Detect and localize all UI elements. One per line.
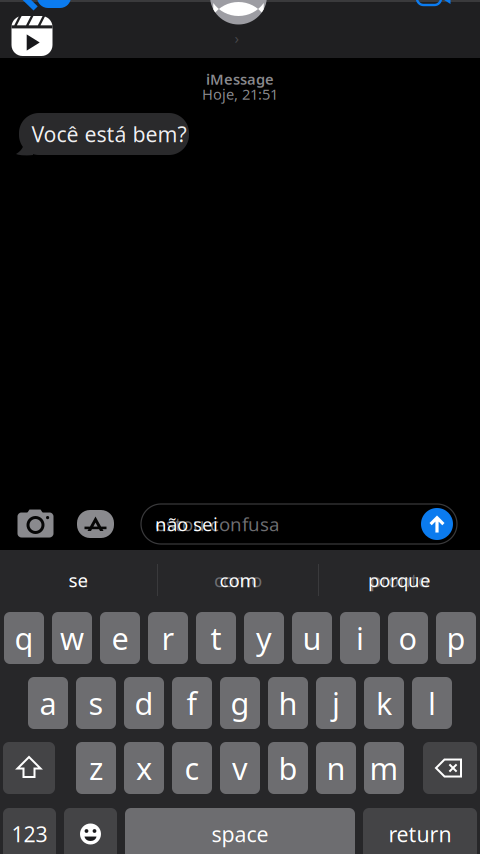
staticText: h	[278, 683, 297, 723]
button[interactable]: Video clip	[11, 16, 52, 56]
button[interactable]: Shift	[3, 742, 55, 794]
staticText: ›	[234, 28, 239, 48]
staticText: o	[398, 618, 417, 658]
staticText: t	[210, 618, 221, 658]
staticText: c	[184, 748, 199, 788]
button[interactable]: FaceTime	[417, 0, 463, 6]
button[interactable]: u	[292, 612, 332, 664]
button[interactable]: App Store	[77, 510, 114, 538]
button[interactable]: Send	[421, 508, 453, 540]
button[interactable]: w	[52, 612, 92, 664]
button[interactable]: v	[220, 742, 260, 794]
staticText: iMessage	[206, 69, 274, 89]
button[interactable]: b	[268, 742, 308, 794]
staticText: return	[388, 820, 451, 848]
staticText: y	[256, 618, 272, 658]
button[interactable]: pronto	[319, 558, 480, 602]
staticText: j	[332, 683, 340, 723]
staticText: w	[60, 618, 84, 658]
button[interactable]: space	[125, 808, 355, 854]
staticText: com	[219, 568, 256, 592]
button[interactable]: 123	[3, 808, 56, 854]
staticText: l	[428, 683, 436, 723]
staticText: v	[232, 748, 248, 788]
staticText: m	[369, 748, 398, 788]
staticText: Você está bem?	[31, 120, 186, 148]
staticText: space	[211, 820, 268, 848]
button[interactable]: d	[124, 677, 164, 729]
staticText: z	[89, 748, 103, 788]
staticText: s	[88, 683, 103, 723]
button[interactable]: Back	[14, 0, 40, 7]
staticText: não sei	[155, 512, 218, 536]
staticText: sa	[69, 568, 88, 592]
button[interactable]: Delete	[423, 742, 477, 794]
button[interactable]: z	[76, 742, 116, 794]
button[interactable]: a	[28, 677, 68, 729]
staticText: r	[161, 618, 174, 658]
button[interactable]: y	[244, 612, 284, 664]
staticText: a	[39, 683, 56, 723]
staticText: Hoje, 21:51	[202, 84, 278, 104]
staticText: q	[14, 618, 33, 658]
button[interactable]: e	[100, 612, 140, 664]
button[interactable]: Emoji	[64, 808, 117, 854]
button[interactable]: g	[220, 677, 260, 729]
staticText: porque	[368, 568, 431, 592]
button[interactable]: n	[316, 742, 356, 794]
staticText: e	[111, 618, 128, 658]
staticText: f	[186, 683, 197, 723]
button[interactable]: x	[124, 742, 164, 794]
button[interactable]: f	[172, 677, 212, 729]
staticText: pronto	[370, 568, 429, 592]
staticText: u	[302, 618, 321, 658]
button[interactable]: Camera	[14, 504, 58, 544]
staticText: b	[278, 748, 297, 788]
staticText: k	[376, 683, 392, 723]
staticText: p	[446, 618, 465, 658]
button[interactable]: p	[436, 612, 476, 664]
button[interactable]: r	[148, 612, 188, 664]
staticText: x	[136, 748, 152, 788]
button[interactable]: k	[364, 677, 404, 729]
button[interactable]: i	[340, 612, 380, 664]
button[interactable]: j	[316, 677, 356, 729]
button[interactable]: como	[158, 558, 318, 602]
button[interactable]: h	[268, 677, 308, 729]
staticText: n	[326, 748, 345, 788]
staticText: g	[230, 683, 249, 723]
staticText: 123	[11, 820, 47, 848]
staticText: se	[68, 568, 88, 592]
button[interactable]: c	[172, 742, 212, 794]
button[interactable]: return	[363, 808, 477, 854]
button[interactable]: o	[388, 612, 428, 664]
staticText: como	[214, 568, 262, 592]
button[interactable]: l	[412, 677, 452, 729]
staticText: d	[134, 683, 153, 723]
staticText: estou confusa	[155, 512, 279, 536]
button[interactable]: m	[364, 742, 404, 794]
staticText: i	[356, 618, 364, 658]
button[interactable]: q	[4, 612, 44, 664]
button[interactable]: sa	[0, 558, 157, 602]
button[interactable]: t	[196, 612, 236, 664]
button[interactable]: s	[76, 677, 116, 729]
